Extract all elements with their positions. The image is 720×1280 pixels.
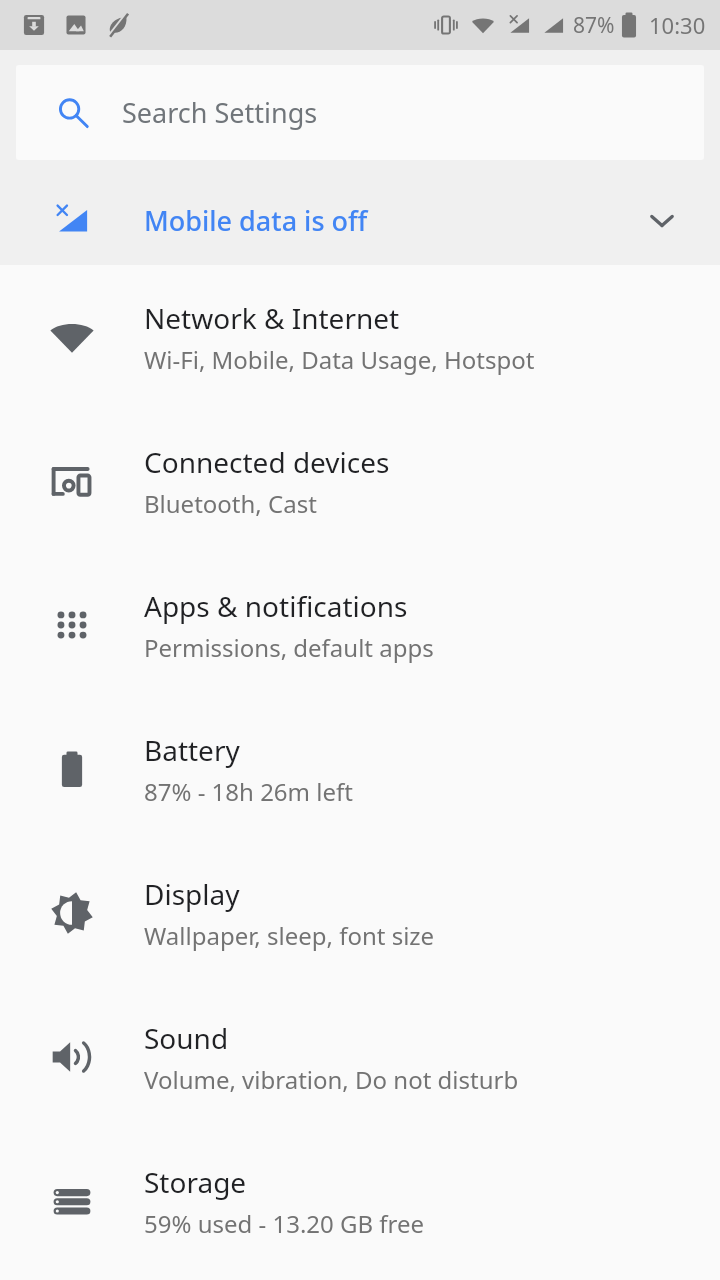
- button[interactable]: Storage: [0, 1129, 720, 1273]
- button[interactable]: Network & Internet: [0, 265, 720, 409]
- button[interactable]: Battery: [0, 697, 720, 841]
- button[interactable]: Connected devices: [0, 409, 720, 553]
- staticText: Permissions, default apps: [144, 631, 434, 664]
- staticText: Apps & notifications: [144, 587, 408, 625]
- staticText: Display: [144, 875, 240, 913]
- button[interactable]: Display: [0, 841, 720, 985]
- button[interactable]: Mobile data is off: [0, 175, 720, 265]
- staticText: Wi-Fi, Mobile, Data Usage, Hotspot: [144, 343, 535, 376]
- button[interactable]: Apps & notifications: [0, 553, 720, 697]
- button[interactable]: Search Settings: [16, 65, 704, 160]
- staticText: 10:30: [649, 10, 706, 40]
- staticText: Battery: [144, 731, 240, 769]
- staticText: Search Settings: [122, 94, 318, 131]
- staticText: Mobile data is off: [144, 202, 368, 239]
- button[interactable]: Expand mobile data: [640, 198, 684, 242]
- staticText: Volume, vibration, Do not disturb: [144, 1063, 519, 1096]
- staticText: Bluetooth, Cast: [144, 487, 317, 520]
- staticText: 87% - 18h 26m left: [144, 775, 353, 808]
- staticText: Storage: [144, 1163, 247, 1201]
- staticText: Connected devices: [144, 443, 390, 481]
- button[interactable]: Sound: [0, 985, 720, 1129]
- staticText: Sound: [144, 1019, 229, 1057]
- staticText: 59% used - 13.20 GB free: [144, 1207, 425, 1240]
- staticText: 87%: [573, 11, 615, 40]
- staticText: Network & Internet: [144, 299, 400, 337]
- staticText: Wallpaper, sleep, font size: [144, 919, 435, 952]
